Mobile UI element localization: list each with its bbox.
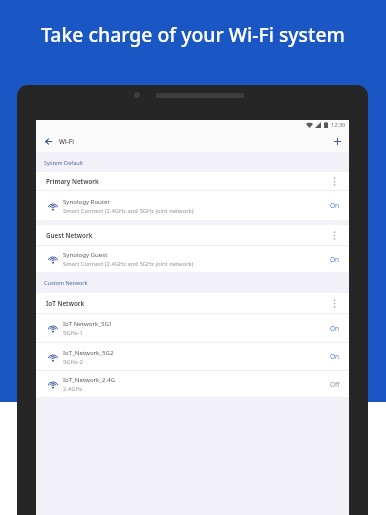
button[interactable]: IoT Network_5G1 xyxy=(36,314,349,342)
button[interactable]: Guest Network xyxy=(36,225,349,245)
staticText: 5GHz-2 xyxy=(63,358,83,366)
button[interactable]: More options xyxy=(327,174,341,188)
staticText: System Default xyxy=(44,159,84,166)
staticText: On xyxy=(330,352,340,361)
button[interactable]: IoT Network xyxy=(36,293,349,313)
staticText: Custom Network xyxy=(44,279,88,286)
staticText: On xyxy=(330,324,340,333)
staticText: Synology Guest xyxy=(63,250,108,258)
staticText: Off xyxy=(330,380,340,389)
staticText: IoT_Network_5G2 xyxy=(63,348,114,356)
staticText: Smart Connect (2.4GHz and 5GHz joint net… xyxy=(63,207,194,215)
staticText: Synology Router xyxy=(63,197,111,205)
button[interactable]: Add network xyxy=(329,133,345,149)
staticText: IoT_Network_2.4G xyxy=(63,375,116,383)
staticText: IoT Network xyxy=(46,299,85,308)
staticText: 12:30 xyxy=(331,121,346,129)
staticText: 2.4GHz xyxy=(63,385,83,393)
staticText: Take charge of your Wi-Fi system xyxy=(41,21,345,47)
staticText: Smart Connect (2.4GHz and 5GHz joint net… xyxy=(63,260,194,268)
staticText: IoT Network_5G1 xyxy=(63,319,113,327)
staticText: Wi-Fi xyxy=(59,137,74,146)
staticText: Guest Network xyxy=(46,231,93,240)
staticText: Primary Network xyxy=(46,177,99,186)
button[interactable]: IoT_Network_2.4G xyxy=(36,371,349,397)
button[interactable]: Primary Network xyxy=(36,172,349,190)
button[interactable]: More options xyxy=(327,228,341,242)
button[interactable]: More options xyxy=(327,296,341,310)
button[interactable]: Synology Router xyxy=(36,191,349,220)
button[interactable]: Synology Guest xyxy=(36,246,349,272)
staticText: On xyxy=(330,201,340,210)
staticText: 5GHz-1 xyxy=(63,329,83,337)
button[interactable]: IoT_Network_5G2 xyxy=(36,343,349,370)
button[interactable]: Back xyxy=(41,134,55,148)
staticText: On xyxy=(330,255,340,264)
